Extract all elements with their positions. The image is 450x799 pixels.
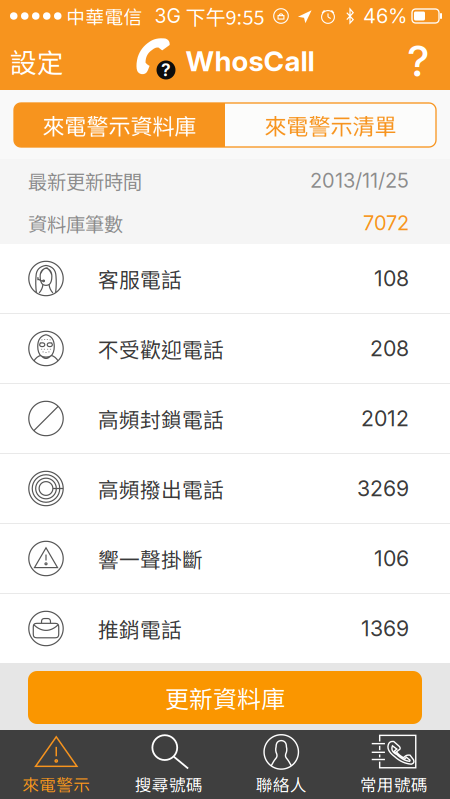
button[interactable]: 搜尋號碼 bbox=[112, 726, 225, 799]
staticText: 2012 bbox=[361, 406, 409, 431]
staticText: 設定 bbox=[10, 42, 64, 80]
button[interactable]: 常用號碼 bbox=[337, 726, 450, 799]
staticText: WhosCall bbox=[185, 44, 314, 78]
button[interactable]: 推銷電話 bbox=[0, 594, 450, 663]
staticText: 來電警示資料庫 bbox=[42, 109, 196, 141]
button[interactable]: 客服電話 bbox=[0, 244, 450, 313]
staticText: ? bbox=[161, 59, 171, 80]
button[interactable]: 聯絡人 bbox=[225, 726, 337, 799]
staticText: 108 bbox=[374, 266, 409, 291]
staticText: 來電警示清單 bbox=[264, 109, 396, 141]
staticText: 高頻撥出電話 bbox=[98, 473, 224, 503]
staticText: 2013/11/25 bbox=[310, 168, 409, 193]
button[interactable]: Help bbox=[391, 32, 450, 90]
staticText: 資料庫筆數 bbox=[28, 209, 123, 237]
staticText: 7072 bbox=[363, 211, 409, 235]
staticText: 高頻封鎖電話 bbox=[98, 403, 224, 433]
staticText: 106 bbox=[374, 546, 409, 571]
staticText: 3269 bbox=[357, 476, 409, 501]
button[interactable]: 響一聲掛斷 bbox=[0, 524, 450, 593]
staticText: 響一聲掛斷 bbox=[98, 543, 203, 573]
button[interactable]: 來電警示資料庫 bbox=[14, 103, 225, 147]
staticText: 聯絡人 bbox=[256, 772, 307, 796]
staticText: 中華電信 bbox=[66, 2, 142, 29]
button[interactable]: 設定 bbox=[0, 32, 78, 90]
staticText: 搜尋號碼 bbox=[135, 772, 203, 796]
staticText: 208 bbox=[370, 336, 409, 361]
staticText: 46% bbox=[363, 4, 407, 28]
button[interactable]: 更新資料庫 bbox=[28, 671, 422, 724]
staticText: 3G bbox=[154, 4, 180, 28]
staticText: 更新資料庫 bbox=[165, 680, 285, 715]
staticText: 來電警示 bbox=[22, 772, 90, 796]
staticText: 不受歡迎電話 bbox=[98, 333, 224, 363]
button[interactable]: 來電警示 bbox=[0, 726, 112, 799]
staticText: 下午9:55 bbox=[185, 1, 264, 30]
staticText: 最新更新時間 bbox=[28, 166, 142, 194]
button[interactable]: 來電警示清單 bbox=[225, 103, 436, 147]
staticText: 常用號碼 bbox=[360, 772, 428, 796]
staticText: 客服電話 bbox=[98, 263, 182, 293]
button[interactable]: 不受歡迎電話 bbox=[0, 314, 450, 383]
staticText: 1369 bbox=[361, 616, 409, 641]
button[interactable]: 高頻封鎖電話 bbox=[0, 384, 450, 453]
staticText: 推銷電話 bbox=[98, 613, 182, 643]
button[interactable]: 高頻撥出電話 bbox=[0, 454, 450, 523]
staticText: ? bbox=[407, 35, 430, 87]
